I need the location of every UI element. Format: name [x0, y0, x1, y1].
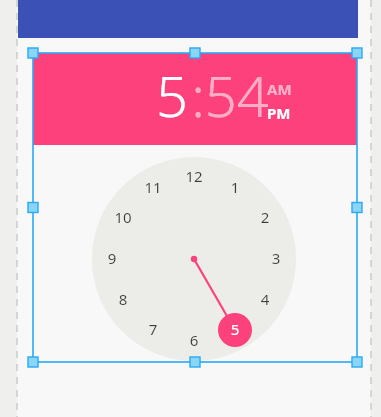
staticText: 1: [221, 177, 249, 199]
button[interactable]: 12: [180, 166, 208, 188]
button[interactable]: 10: [109, 207, 137, 229]
button[interactable]: 8: [109, 289, 137, 311]
staticText: 7: [139, 319, 167, 341]
staticText: 3: [262, 248, 290, 270]
button[interactable]: Minutes 54: [188, 57, 272, 129]
staticText: 5: [221, 319, 249, 341]
staticText: 6: [180, 330, 208, 352]
button[interactable]: 1: [221, 177, 249, 199]
staticText: 11: [139, 177, 167, 199]
button[interactable]: Clock dial: [92, 157, 296, 361]
button[interactable]: 4: [251, 289, 279, 311]
staticText: :54: [188, 57, 272, 129]
staticText: PM: [267, 103, 291, 123]
button[interactable]: AM: [267, 79, 303, 99]
button[interactable]: 7: [139, 319, 167, 341]
button[interactable]: 9: [98, 248, 126, 270]
staticText: 4: [251, 289, 279, 311]
staticText: 12: [180, 166, 208, 188]
button[interactable]: 6: [180, 330, 208, 352]
staticText: 5: [151, 57, 193, 129]
button[interactable]: 2: [251, 207, 279, 229]
button[interactable]: PM: [267, 103, 303, 123]
button[interactable]: 3: [262, 248, 290, 270]
staticText: 9: [98, 248, 126, 270]
button[interactable]: 11: [139, 177, 167, 199]
staticText: 8: [109, 289, 137, 311]
staticText: 10: [109, 207, 137, 229]
button[interactable]: 5: [221, 319, 249, 341]
staticText: AM: [267, 79, 292, 99]
staticText: 2: [251, 207, 279, 229]
button[interactable]: Hour 5: [151, 57, 193, 129]
